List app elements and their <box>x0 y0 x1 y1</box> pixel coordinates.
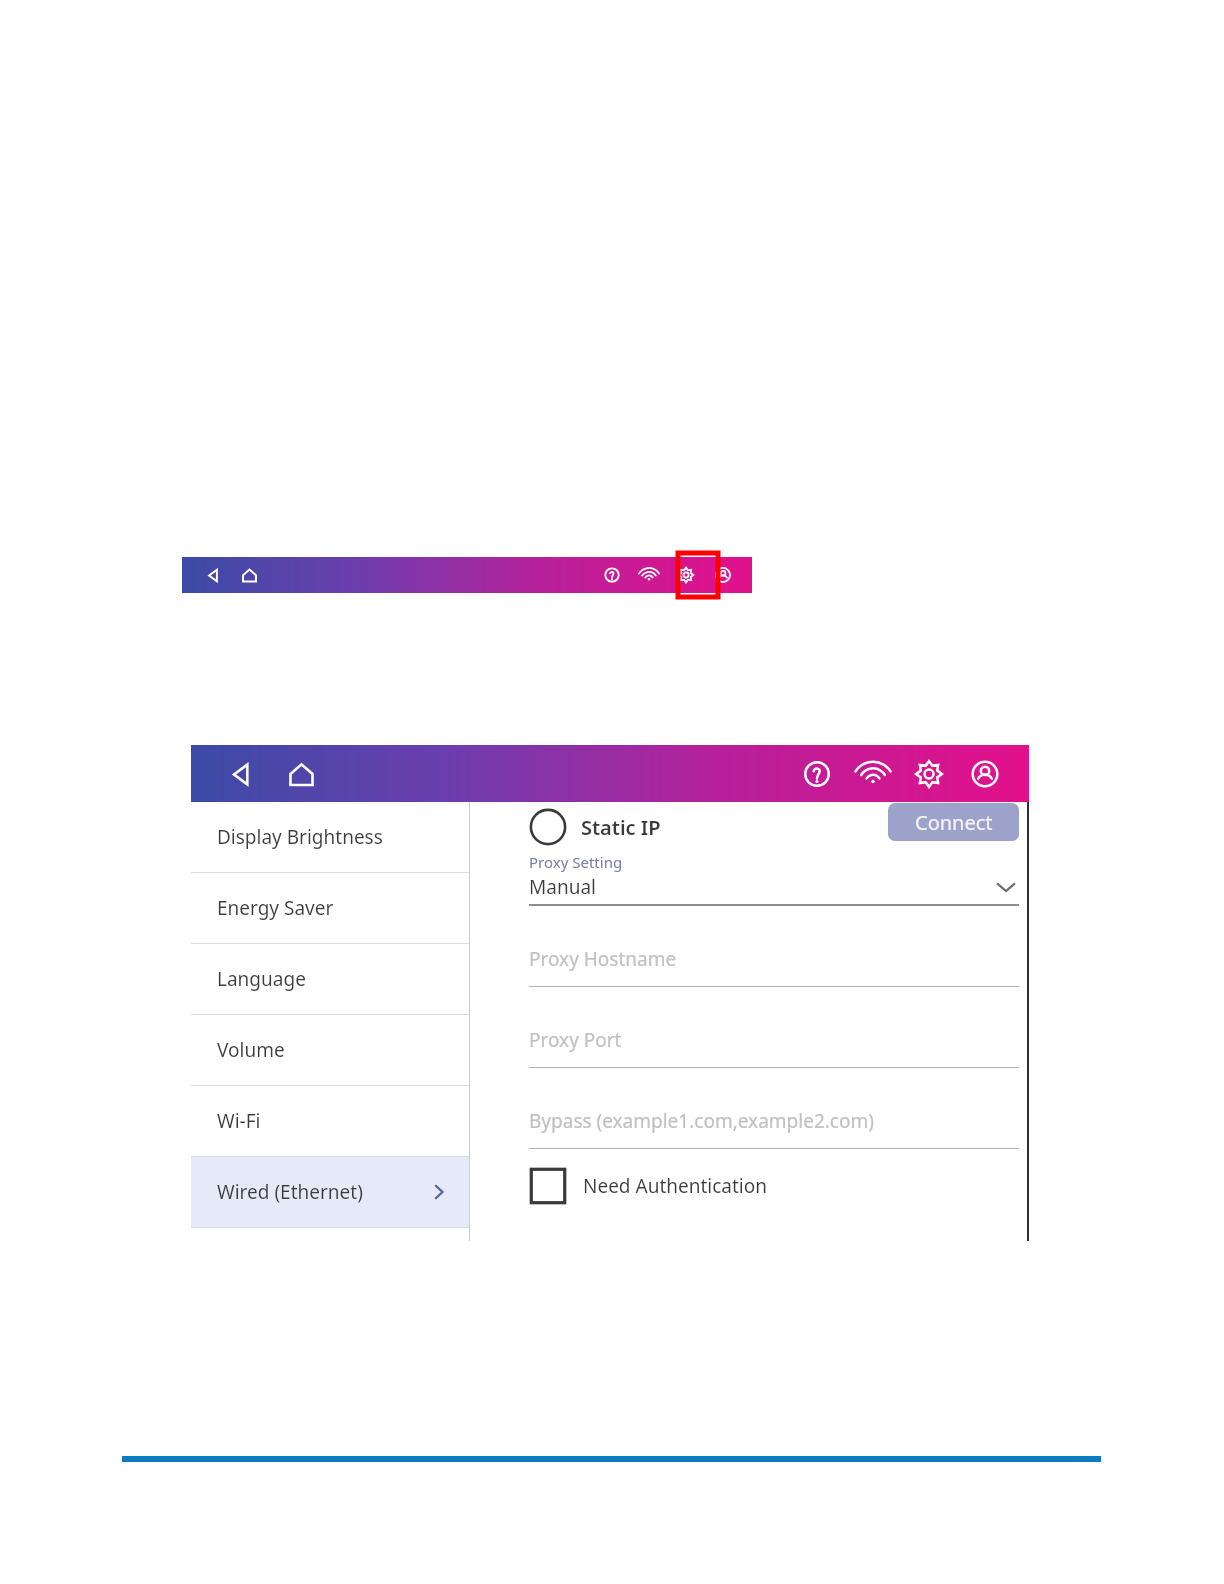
button[interactable]: Proxy Hostname <box>529 932 1019 987</box>
staticText: Display Brightness <box>217 824 383 850</box>
button[interactable]: Need Authentication <box>529 1167 1019 1205</box>
button[interactable]: Highlighted settings icon <box>676 551 720 599</box>
button[interactable]: Settings <box>907 752 951 796</box>
button[interactable]: Wi-Fi <box>191 1086 470 1156</box>
button[interactable]: Help <box>795 752 839 796</box>
staticText: Proxy Setting <box>529 852 623 872</box>
button[interactable]: Bypass (example1.com,example2.com) <box>529 1094 1019 1149</box>
button[interactable]: Back <box>200 562 226 588</box>
button[interactable]: Language <box>191 944 470 1014</box>
staticText: Volume <box>217 1037 285 1063</box>
staticText: Wired (Ethernet) <box>217 1179 363 1205</box>
button[interactable]: Proxy Port <box>529 1013 1019 1068</box>
staticText: Proxy Hostname <box>529 946 677 972</box>
staticText: Bypass (example1.com,example2.com) <box>529 1108 874 1134</box>
button[interactable]: Settings <box>673 562 699 588</box>
button[interactable]: Display Brightness <box>191 802 470 872</box>
staticText: Manual <box>529 874 596 900</box>
button[interactable]: Proxy Setting <box>529 852 1019 906</box>
staticText: Energy Saver <box>217 895 334 921</box>
button[interactable]: Account <box>963 752 1007 796</box>
button[interactable]: Home <box>236 562 262 588</box>
button[interactable]: Energy Saver <box>191 873 470 943</box>
button[interactable]: Wi-Fi <box>851 752 895 796</box>
staticText: Proxy Port <box>529 1027 622 1053</box>
button[interactable]: Account <box>710 562 736 588</box>
button[interactable]: Wi-Fi <box>636 562 662 588</box>
button[interactable]: Home <box>279 752 323 796</box>
staticText: Connect <box>915 809 993 836</box>
button[interactable]: Static IP <box>529 808 661 846</box>
staticText: Static IP <box>581 814 661 841</box>
staticText: Wi-Fi <box>217 1108 261 1134</box>
button[interactable]: Connect <box>888 803 1019 841</box>
staticText: Language <box>217 966 306 992</box>
button[interactable]: Volume <box>191 1015 470 1085</box>
button[interactable]: Wired (Ethernet) <box>191 1157 470 1227</box>
button[interactable]: Help <box>599 562 625 588</box>
staticText: Need Authentication <box>583 1173 767 1199</box>
button[interactable]: Back <box>219 752 263 796</box>
